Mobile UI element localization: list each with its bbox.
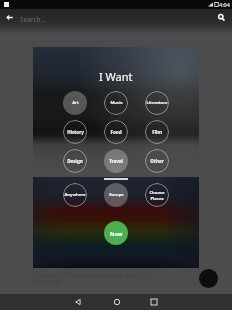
staticText: I Want (99, 69, 133, 84)
staticText: Choose Places (149, 190, 165, 201)
button[interactable]: Home (105, 294, 129, 310)
staticText: Other (150, 158, 164, 164)
button[interactable]: Anywhere (63, 183, 87, 207)
staticText: Europe (109, 192, 124, 198)
button[interactable]: Back (3, 11, 16, 24)
button[interactable]: Art (63, 91, 87, 115)
staticText: 4:04 (219, 1, 230, 8)
staticText: Search... (20, 15, 46, 24)
button[interactable]: Back (66, 294, 90, 310)
button[interactable]: History (63, 120, 87, 144)
button[interactable]: Choose Places (145, 183, 169, 207)
staticText: Design (67, 158, 83, 164)
button[interactable]: Search (215, 11, 228, 24)
button[interactable]: Film (145, 120, 169, 144)
staticText: Film (152, 129, 162, 135)
button[interactable]: Recents (142, 294, 166, 310)
staticText: Literature (146, 100, 168, 106)
button[interactable]: Travel (104, 149, 128, 173)
staticText: Food (110, 129, 122, 135)
button[interactable]: Now (104, 221, 128, 245)
button[interactable]: Add (199, 269, 218, 288)
staticText: History (67, 129, 84, 135)
button[interactable]: Food (104, 120, 128, 144)
staticText: Travel (109, 158, 123, 164)
staticText: Music (110, 100, 123, 106)
button[interactable]: Europe (104, 183, 128, 207)
staticText: Art (72, 100, 79, 106)
staticText: Now (110, 230, 123, 237)
button[interactable]: Design (63, 149, 87, 173)
button[interactable]: Music (104, 91, 128, 115)
staticText: Anywhere (64, 192, 86, 198)
button[interactable]: Other (145, 149, 169, 173)
button[interactable]: Literature (145, 91, 169, 115)
